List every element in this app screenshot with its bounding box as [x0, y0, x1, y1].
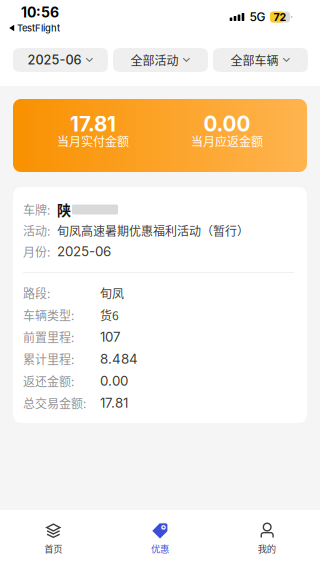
staticText: 前置里程:	[23, 328, 74, 346]
button[interactable]: 2025-06	[13, 48, 108, 72]
staticText: 活动:	[23, 222, 50, 239]
staticText: 陕	[57, 199, 71, 220]
staticText: 优惠	[151, 542, 169, 555]
staticText: 当月实付金额	[57, 132, 129, 150]
staticText: 货6	[100, 306, 119, 324]
staticText: 17.81	[70, 111, 116, 136]
button[interactable]: 首页	[0, 510, 107, 568]
staticText: 107	[100, 329, 121, 345]
staticText: 2025-06	[57, 243, 111, 259]
staticText: 总交易金额:	[23, 394, 86, 412]
staticText: 当月应返金额	[191, 132, 263, 150]
staticText: 10:56	[21, 4, 59, 21]
staticText: 全部活动	[130, 51, 178, 69]
staticText: 我的	[258, 542, 276, 555]
staticText: 旬凤高速暑期优惠福利活动（暂行）	[57, 222, 249, 239]
staticText: 0.00	[203, 111, 250, 136]
staticText: 8.484	[100, 351, 138, 367]
staticText: 72	[273, 10, 286, 23]
staticText: 0.00	[100, 373, 128, 389]
staticText: 5G	[249, 10, 265, 24]
staticText: 车辆类型:	[23, 306, 74, 324]
staticText: TestFlight	[17, 22, 60, 34]
staticText: 17.81	[100, 395, 128, 411]
staticText: 旬凤	[100, 284, 124, 302]
staticText: 累计里程:	[23, 350, 74, 368]
staticText: 车牌:	[23, 201, 50, 218]
button[interactable]: 全部车辆	[213, 48, 308, 72]
staticText: 路段:	[23, 284, 50, 302]
button[interactable]: 我的	[213, 510, 320, 568]
staticText: 全部车辆	[230, 51, 278, 69]
staticText: 月份:	[23, 243, 50, 260]
button[interactable]: 优惠	[107, 510, 213, 568]
staticText: 返还金额:	[23, 372, 74, 390]
staticText: 首页	[44, 542, 62, 555]
button[interactable]: 全部活动	[113, 48, 208, 72]
staticText: 2025-06	[27, 52, 81, 68]
